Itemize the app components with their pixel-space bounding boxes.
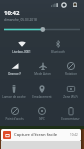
button[interactable]: Bluetooth: [44, 35, 72, 53]
button[interactable]: Point d'accès: [0, 102, 28, 120]
button[interactable]: Orange F: [1, 57, 28, 75]
staticText: 10:42: [4, 9, 20, 17]
button[interactable]: Capture d'écran facile: [1, 129, 81, 141]
staticText: Bluetooth: [51, 50, 65, 53]
staticText: Lampe de poche: [2, 95, 26, 98]
staticText: Capture d'écran facile: [14, 132, 58, 138]
staticText: Mode Avion: [34, 72, 51, 75]
staticText: 10:42: [70, 133, 78, 137]
staticText: Emplacement: [32, 95, 52, 98]
staticText: Orange F: [8, 72, 21, 75]
button[interactable]: NFC: [28, 102, 56, 120]
button[interactable]: Settings: [61, 2, 67, 8]
staticText: Zone Wi-Fi: [63, 95, 78, 98]
button[interactable]: Économiseur: [56, 102, 84, 120]
staticText: Livebox-0001: [12, 50, 31, 53]
staticText: Point d'accès: [5, 117, 24, 120]
button[interactable]: Rotation: [57, 57, 84, 75]
button[interactable]: Lampe de poche: [0, 80, 28, 98]
staticText: NFC: [39, 117, 45, 120]
staticText: dimanche, 05.03.2018: [4, 18, 37, 22]
staticText: Économiseur: [61, 117, 80, 120]
button[interactable]: [4, 26, 80, 33]
button[interactable]: Zone Wi-Fi: [56, 80, 84, 98]
button[interactable]: Livebox-0001: [7, 35, 35, 53]
button[interactable]: Mode Avion: [29, 57, 56, 75]
staticText: Rotation: [65, 72, 77, 75]
button[interactable]: Emplacement: [28, 80, 56, 98]
